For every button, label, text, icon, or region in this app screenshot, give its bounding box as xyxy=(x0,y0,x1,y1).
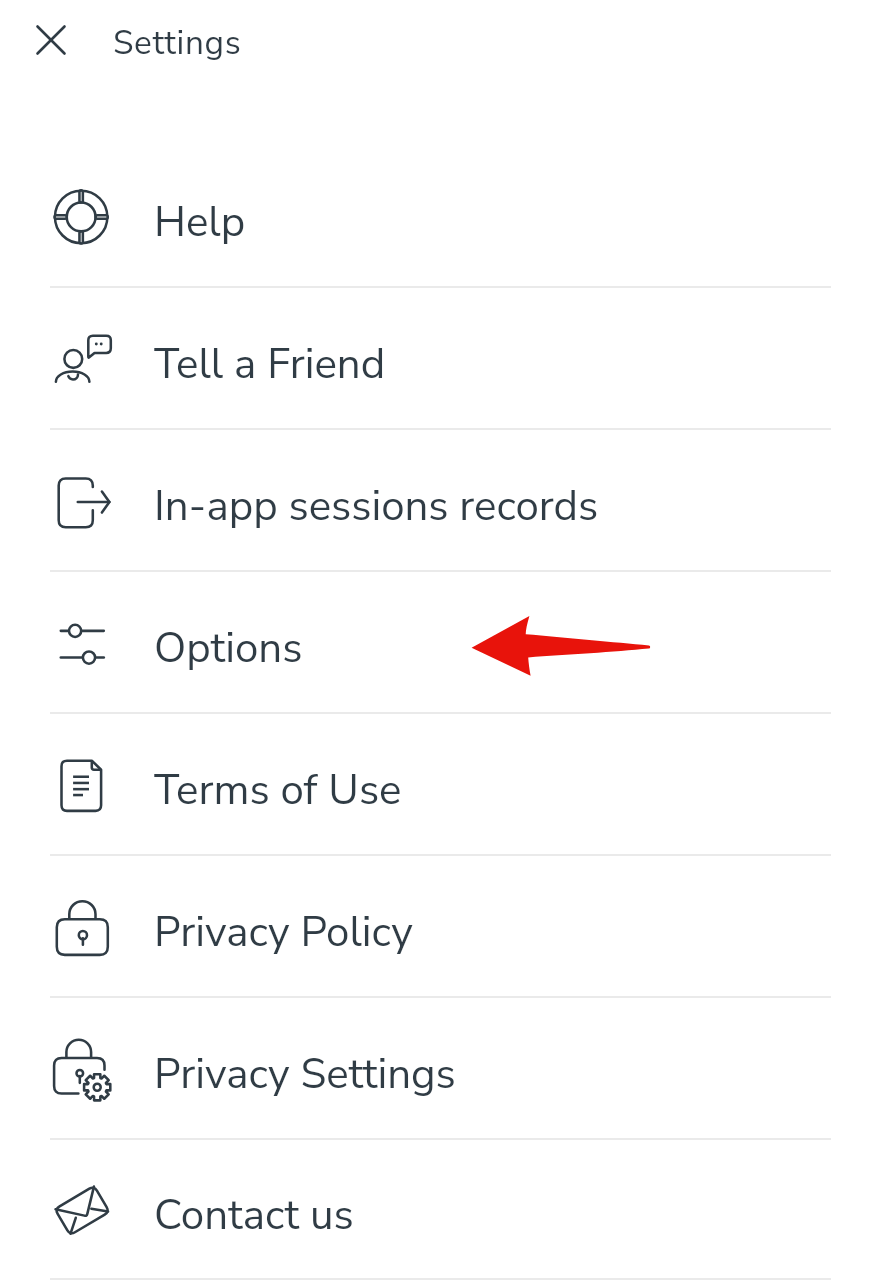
button[interactable]: Privacy Policy xyxy=(0,856,882,998)
staticText: Privacy Settings xyxy=(154,1046,456,1103)
staticText: Settings xyxy=(113,20,242,65)
button[interactable]: Contact us xyxy=(0,1140,882,1280)
button[interactable]: Tell a Friend xyxy=(0,288,882,430)
button[interactable]: Options xyxy=(0,572,882,714)
button[interactable]: Privacy Settings xyxy=(0,998,882,1140)
staticText: Tell a Friend xyxy=(154,336,386,393)
staticText: Options xyxy=(154,620,303,677)
staticText: Help xyxy=(154,194,246,251)
button[interactable]: Terms of Use xyxy=(0,714,882,856)
button[interactable]: In-app sessions records xyxy=(0,430,882,572)
staticText: Contact us xyxy=(154,1187,354,1244)
staticText: In-app sessions records xyxy=(154,478,599,535)
staticText: Privacy Policy xyxy=(154,904,413,961)
button[interactable]: Close xyxy=(24,13,78,67)
staticText: Terms of Use xyxy=(154,762,402,819)
button[interactable]: Help xyxy=(0,146,882,288)
